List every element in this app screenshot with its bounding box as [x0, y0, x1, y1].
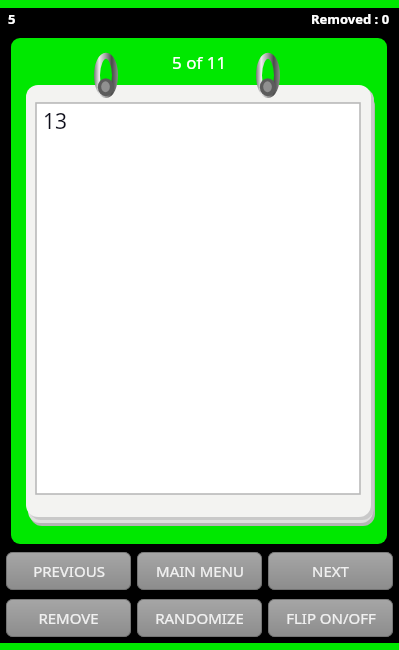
staticText: MAIN MENU [156, 561, 244, 581]
staticText: 5 [8, 10, 16, 28]
button[interactable]: PREVIOUS [6, 552, 131, 590]
staticText: RANDOMIZE [155, 608, 244, 628]
staticText: 5 of 11 [172, 51, 227, 74]
button[interactable]: RANDOMIZE [137, 599, 262, 637]
button[interactable]: NEXT [268, 552, 393, 590]
button[interactable]: REMOVE [6, 599, 131, 637]
staticText: REMOVE [38, 608, 99, 628]
button[interactable]: 13 [26, 85, 371, 517]
staticText: PREVIOUS [33, 561, 105, 581]
staticText: FLIP ON/OFF [286, 608, 376, 628]
button[interactable]: FLIP ON/OFF [268, 599, 393, 637]
button[interactable]: MAIN MENU [137, 552, 262, 590]
staticText: Removed : 0 [311, 10, 390, 28]
staticText: 13 [43, 107, 68, 136]
staticText: NEXT [312, 561, 349, 581]
